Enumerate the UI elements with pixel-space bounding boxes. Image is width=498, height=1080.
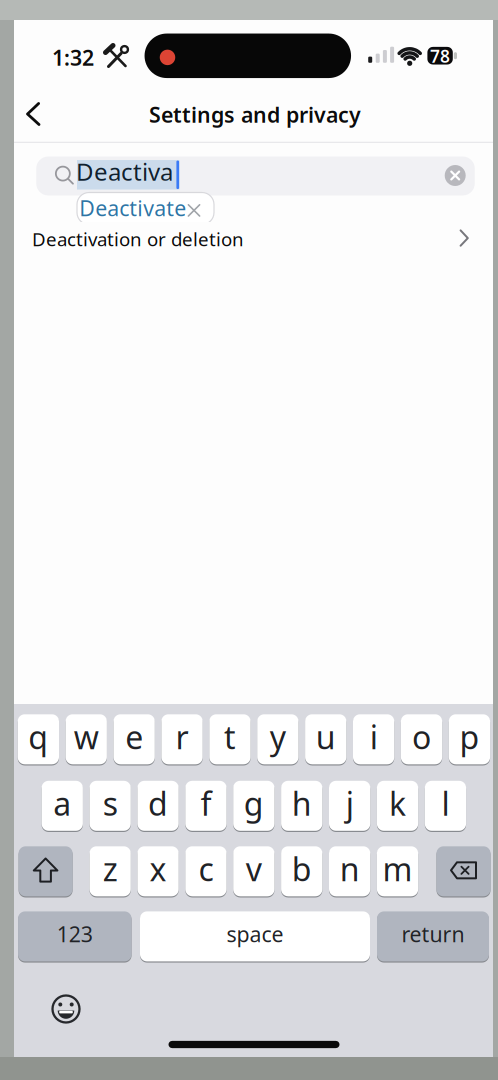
button[interactable]: l	[425, 780, 466, 832]
button[interactable]: s	[89, 780, 131, 832]
button[interactable]: e	[113, 713, 155, 765]
staticText: l	[441, 782, 449, 825]
staticText: Deactiva	[76, 156, 173, 187]
staticText: return	[401, 920, 464, 948]
staticText: 123	[57, 920, 93, 948]
staticText: p	[459, 716, 479, 758]
button[interactable]: x	[137, 845, 179, 897]
button[interactable]: y	[257, 713, 298, 765]
staticText: z	[103, 848, 118, 890]
button[interactable]: Deactivation or deletion	[14, 222, 493, 256]
staticText: h	[292, 782, 312, 825]
staticText: v	[246, 848, 262, 890]
button[interactable]: return	[377, 910, 489, 962]
staticText: w	[74, 716, 99, 758]
staticText: space	[226, 920, 283, 948]
staticText: Settings and privacy	[149, 100, 361, 129]
staticText: f	[200, 782, 211, 825]
button[interactable]: r	[161, 713, 203, 765]
staticText: t	[224, 716, 236, 758]
staticText: Deactivation or deletion	[32, 227, 244, 251]
button[interactable]: f	[185, 780, 227, 832]
button[interactable]: i	[353, 713, 394, 765]
button[interactable]: 123	[18, 910, 131, 962]
staticText: 78	[430, 44, 450, 67]
button[interactable]: t	[209, 713, 251, 765]
button[interactable]: w	[66, 713, 107, 765]
button[interactable]: Back	[11, 92, 55, 136]
staticText: e	[125, 716, 143, 758]
button[interactable]: q	[18, 713, 59, 765]
staticText: j	[346, 782, 354, 825]
staticText: y	[270, 716, 286, 758]
button[interactable]: p	[449, 713, 490, 765]
staticText: c	[198, 848, 213, 890]
button[interactable]: o	[401, 713, 442, 765]
button[interactable]: a	[42, 780, 83, 832]
button[interactable]: Emoji	[48, 991, 84, 1027]
staticText: i	[370, 716, 378, 758]
button[interactable]: Search	[36, 156, 475, 195]
button[interactable]: n	[329, 845, 370, 897]
button[interactable]: g	[233, 780, 274, 832]
button[interactable]: c	[185, 845, 227, 897]
staticText: q	[28, 716, 48, 758]
staticText: b	[292, 848, 312, 890]
button[interactable]: z	[89, 845, 131, 897]
staticText: a	[53, 782, 71, 825]
staticText: k	[389, 782, 406, 825]
staticText: g	[244, 782, 264, 825]
button[interactable]: Shift	[19, 845, 73, 897]
staticText: s	[103, 782, 118, 825]
button[interactable]: d	[137, 780, 179, 832]
button[interactable]: Deactivate	[77, 192, 214, 224]
button[interactable]: b	[281, 845, 322, 897]
staticText: o	[412, 716, 431, 758]
button[interactable]: Clear text	[440, 160, 470, 190]
button[interactable]: space	[140, 910, 370, 962]
staticText: m	[382, 848, 412, 890]
button[interactable]: v	[233, 845, 274, 897]
button[interactable]: j	[329, 780, 370, 832]
button[interactable]: Delete	[436, 845, 490, 897]
staticText: n	[340, 848, 360, 890]
staticText: 1:32	[52, 43, 94, 72]
staticText: r	[175, 716, 188, 758]
staticText: d	[148, 782, 168, 825]
staticText: x	[150, 848, 167, 890]
button[interactable]: k	[377, 780, 418, 832]
button[interactable]: h	[281, 780, 322, 832]
staticText: u	[316, 716, 336, 758]
button[interactable]: m	[377, 845, 418, 897]
staticText: Deactivate	[79, 194, 186, 222]
button[interactable]: u	[305, 713, 346, 765]
